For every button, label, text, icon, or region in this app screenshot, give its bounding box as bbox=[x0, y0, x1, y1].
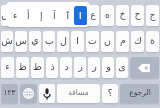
staticText: ق bbox=[45, 9, 53, 20]
button[interactable]: مسافة bbox=[57, 84, 100, 103]
button[interactable]: Backspace bbox=[130, 57, 159, 78]
button[interactable]: ص bbox=[15, 5, 27, 26]
staticText: ء bbox=[13, 10, 18, 21]
button[interactable]: ه bbox=[101, 5, 114, 26]
button[interactable]: م bbox=[116, 31, 129, 52]
staticText: ذ bbox=[50, 61, 55, 72]
staticText: غ bbox=[75, 9, 81, 20]
staticText: ة bbox=[150, 35, 155, 46]
button[interactable]: ذ bbox=[46, 57, 58, 78]
staticText: ل bbox=[60, 35, 67, 46]
staticText: ء bbox=[5, 61, 10, 72]
button[interactable]: ج bbox=[146, 5, 159, 26]
staticText: و bbox=[106, 61, 111, 72]
staticText: ن bbox=[104, 35, 111, 46]
button[interactable]: س bbox=[15, 31, 27, 52]
staticText: ى bbox=[118, 61, 126, 72]
staticText: مسافة bbox=[68, 88, 89, 97]
button[interactable]: ء bbox=[8, 6, 22, 25]
button[interactable]: ة bbox=[146, 31, 159, 52]
staticText: س bbox=[15, 35, 27, 46]
staticText: الرجوع bbox=[129, 88, 151, 97]
staticText: ظ bbox=[18, 61, 27, 72]
button[interactable]: ٱ bbox=[61, 6, 74, 25]
staticText: ر bbox=[92, 61, 97, 72]
staticText: أ bbox=[27, 10, 30, 21]
button[interactable]: خ bbox=[116, 5, 129, 26]
button[interactable]: الرجوع bbox=[120, 84, 159, 103]
button[interactable]: ١٢٣ bbox=[1, 84, 18, 103]
button[interactable]: ل bbox=[57, 31, 69, 52]
staticText: ش bbox=[1, 35, 13, 46]
staticText: إ bbox=[40, 10, 43, 21]
button[interactable]: د bbox=[60, 57, 72, 78]
staticText: آ bbox=[53, 10, 56, 21]
staticText: م bbox=[120, 35, 126, 46]
button[interactable]: Voice input bbox=[39, 84, 55, 103]
staticText: ص bbox=[15, 9, 27, 20]
button[interactable]: ق bbox=[43, 5, 55, 26]
staticText: ف bbox=[58, 9, 68, 20]
staticText: ا bbox=[79, 10, 82, 21]
button[interactable]: و bbox=[102, 57, 114, 78]
button[interactable]: ك bbox=[131, 31, 144, 52]
button[interactable]: ظ bbox=[16, 57, 29, 78]
staticText: ي bbox=[31, 35, 39, 46]
staticText: ط bbox=[33, 61, 42, 72]
button[interactable]: ء bbox=[1, 57, 14, 78]
button[interactable]: ش bbox=[1, 31, 13, 52]
staticText: ح bbox=[134, 9, 141, 20]
button[interactable]: غ bbox=[71, 5, 84, 26]
button[interactable]: ر bbox=[88, 57, 100, 78]
button[interactable]: ح bbox=[131, 5, 144, 26]
button[interactable]: ز bbox=[74, 57, 86, 78]
staticText: ١٢٣ bbox=[3, 88, 16, 97]
button[interactable]: ى bbox=[116, 57, 128, 78]
staticText: د bbox=[64, 61, 69, 72]
staticText: ع bbox=[90, 9, 96, 20]
button[interactable]: ط bbox=[31, 57, 44, 78]
button[interactable]: ت bbox=[86, 31, 99, 52]
button[interactable]: ع bbox=[86, 5, 99, 26]
button[interactable]: ؟ bbox=[102, 84, 118, 103]
staticText: ٱ bbox=[65, 10, 71, 21]
staticText: ا bbox=[76, 35, 79, 46]
staticText: ه bbox=[105, 9, 110, 20]
staticText: ؟ bbox=[107, 87, 113, 98]
button[interactable]: ض bbox=[1, 5, 13, 26]
staticText: ض bbox=[1, 9, 13, 20]
button[interactable]: ا bbox=[74, 6, 87, 25]
button[interactable]: أ bbox=[22, 6, 35, 25]
staticText: ز bbox=[78, 61, 83, 72]
staticText: ب bbox=[45, 35, 54, 46]
button[interactable]: ف bbox=[57, 5, 69, 26]
staticText: ت bbox=[88, 35, 97, 46]
button[interactable]: ي bbox=[29, 31, 41, 52]
button[interactable]: ب bbox=[43, 31, 55, 52]
button[interactable]: Change keyboard language bbox=[20, 84, 37, 103]
button[interactable]: ا bbox=[71, 31, 84, 52]
staticText: ك bbox=[134, 35, 142, 46]
button[interactable]: آ bbox=[48, 6, 61, 25]
button[interactable]: إ bbox=[35, 6, 48, 25]
button[interactable]: ن bbox=[101, 31, 114, 52]
button[interactable]: ث bbox=[29, 5, 41, 26]
staticText: خ bbox=[119, 9, 126, 20]
staticText: ج bbox=[149, 9, 156, 20]
